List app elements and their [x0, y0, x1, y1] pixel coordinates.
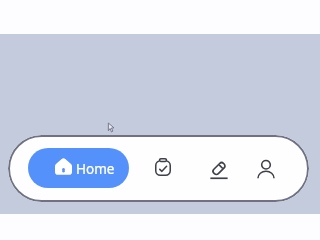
- button[interactable]: Tasks: [143, 147, 183, 187]
- button[interactable]: Profile: [246, 149, 286, 189]
- button[interactable]: Home: [28, 148, 129, 188]
- button[interactable]: Edit: [199, 150, 239, 190]
- staticText: Home: [76, 160, 115, 178]
